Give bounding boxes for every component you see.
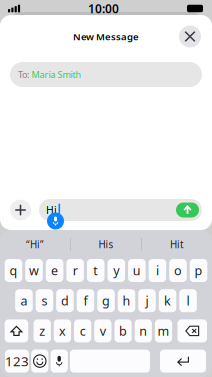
button[interactable]: Emoji: [31, 350, 48, 373]
staticText: t: [93, 262, 98, 279]
button[interactable]: p: [190, 259, 207, 282]
button[interactable]: Close: [179, 25, 201, 47]
staticText: q: [9, 262, 17, 279]
staticText: z: [39, 322, 45, 339]
staticText: j: [145, 292, 148, 309]
staticText: His: [98, 238, 113, 251]
button[interactable]: g: [97, 289, 115, 312]
staticText: d: [61, 292, 69, 309]
button[interactable]: a: [15, 289, 33, 312]
staticText: h: [122, 292, 130, 309]
staticText: p: [194, 262, 202, 279]
button[interactable]: Send: [176, 202, 199, 217]
staticText: s: [41, 292, 47, 309]
staticText: g: [102, 292, 110, 309]
staticText: Maria Smith: [31, 68, 81, 81]
button[interactable]: b: [114, 319, 132, 342]
button[interactable]: w: [25, 259, 43, 282]
button[interactable]: o: [169, 259, 187, 282]
staticText: o: [174, 262, 182, 279]
button[interactable]: s: [36, 289, 53, 312]
staticText: a: [20, 292, 27, 309]
staticText: “Hi”: [26, 238, 44, 251]
button[interactable]: y: [107, 259, 125, 282]
button[interactable]: “Hi”: [0, 230, 70, 259]
button[interactable]: l: [179, 289, 197, 312]
button[interactable]: e: [46, 259, 63, 282]
staticText: x: [59, 322, 66, 339]
staticText: 10:00: [88, 0, 119, 16]
staticText: 123: [5, 352, 29, 370]
button[interactable]: u: [128, 259, 146, 282]
staticText: e: [51, 262, 58, 279]
button[interactable]: v: [94, 319, 111, 342]
staticText: i: [156, 262, 159, 279]
button[interactable]: His: [71, 230, 141, 259]
button[interactable]: Dictate: [51, 350, 68, 373]
staticText: v: [100, 322, 106, 339]
button[interactable]: z: [34, 319, 51, 342]
button[interactable]: q: [5, 259, 22, 282]
button[interactable]: c: [74, 319, 91, 342]
button[interactable]: d: [56, 289, 74, 312]
staticText: To:: [18, 68, 29, 81]
button[interactable]: t: [87, 259, 104, 282]
button[interactable]: m: [155, 319, 172, 342]
button[interactable]: h: [118, 289, 135, 312]
button[interactable]: f: [77, 289, 94, 312]
button[interactable]: 123: [5, 350, 29, 373]
button[interactable]: Add attachment: [10, 199, 31, 220]
button[interactable]: Delete: [177, 319, 207, 342]
staticText: m: [157, 322, 169, 339]
staticText: k: [164, 292, 171, 309]
staticText: n: [139, 322, 147, 339]
button[interactable]: Return: [160, 350, 206, 373]
button[interactable]: Hit: [142, 230, 212, 259]
staticText: Hit: [170, 238, 184, 251]
button[interactable]: r: [66, 259, 84, 282]
button[interactable]: x: [54, 319, 71, 342]
button[interactable]: Shift: [5, 319, 28, 342]
button[interactable]: n: [135, 319, 152, 342]
staticText: r: [73, 262, 78, 279]
staticText: New Message: [73, 30, 139, 43]
staticText: l: [186, 292, 189, 309]
staticText: f: [83, 292, 87, 309]
button[interactable]: Space: [70, 350, 158, 373]
staticText: b: [119, 322, 127, 339]
staticText: y: [113, 262, 119, 279]
button[interactable]: i: [149, 259, 166, 282]
staticText: u: [133, 262, 141, 279]
staticText: Hi: [46, 203, 57, 217]
button[interactable]: j: [138, 289, 156, 312]
button[interactable]: k: [159, 289, 176, 312]
staticText: c: [80, 322, 86, 339]
staticText: w: [29, 262, 39, 279]
button[interactable]: Dictation: [47, 212, 64, 229]
